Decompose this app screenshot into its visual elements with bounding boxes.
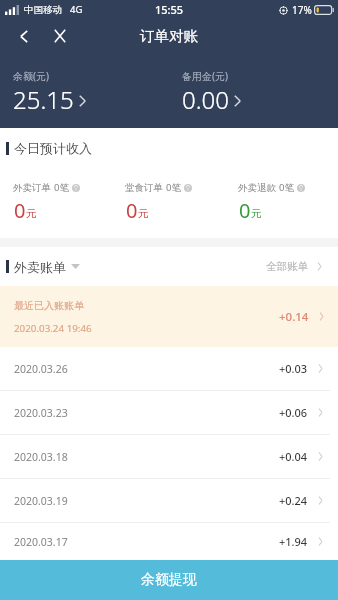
staticText: 0笔	[279, 181, 294, 194]
staticText: 0	[14, 197, 26, 224]
staticText: 外卖订单	[13, 182, 51, 194]
button[interactable]: 2020.03.18	[0, 435, 338, 478]
staticText: 元	[26, 207, 37, 220]
button[interactable]: 备用金(元)	[169, 53, 338, 128]
staticText: 今日预计收入	[14, 140, 92, 156]
staticText: 全部账单	[266, 260, 308, 273]
staticText: 订单对账	[140, 27, 198, 45]
staticText: +0.04	[279, 449, 308, 464]
button[interactable]: 2020.03.17	[0, 523, 338, 560]
staticText: 2020.03.24 19:46	[14, 322, 92, 335]
staticText: 2020.03.18	[14, 450, 68, 464]
staticText: 0笔	[166, 181, 181, 194]
button[interactable]: 2020.03.19	[0, 479, 338, 522]
staticText: 0	[239, 197, 251, 224]
staticText: 中国移动	[24, 4, 62, 16]
button[interactable]: 余额提现	[0, 560, 338, 600]
staticText: 2020.03.17	[14, 535, 68, 549]
button[interactable]: Back	[11, 19, 37, 53]
staticText: 0.00	[182, 83, 229, 116]
staticText: +0.24	[279, 493, 308, 508]
staticText: 堂食订单	[125, 182, 163, 194]
staticText: 15:55	[155, 2, 184, 17]
staticText: 元	[138, 207, 149, 220]
staticText: +1.94	[279, 534, 308, 549]
button[interactable]: 最近已入账账单	[0, 286, 338, 347]
staticText: 余额(元)	[13, 69, 49, 83]
staticText: 外卖账单	[14, 259, 66, 275]
staticText: 25.15	[13, 83, 74, 116]
staticText: 余额提现	[141, 571, 197, 589]
staticText: 最近已入账账单	[14, 299, 84, 312]
button[interactable]: 余额(元)	[0, 53, 169, 128]
staticText: +0.06	[279, 405, 308, 420]
staticText: 元	[251, 207, 262, 220]
staticText: 0	[126, 197, 138, 224]
staticText: +0.14	[279, 309, 309, 325]
button[interactable]: 2020.03.26	[0, 347, 338, 390]
button[interactable]: 全部账单	[254, 252, 338, 281]
staticText: 4G	[70, 3, 83, 16]
staticText: 2020.03.23	[14, 406, 68, 420]
staticText: 2020.03.26	[14, 362, 68, 376]
staticText: 外卖退款	[238, 182, 276, 194]
staticText: 0笔	[54, 181, 69, 194]
staticText: 17%	[292, 3, 312, 17]
staticText: 2020.03.19	[14, 494, 68, 508]
button[interactable]: 2020.03.23	[0, 391, 338, 434]
staticText: 备用金(元)	[182, 69, 228, 83]
button[interactable]: Close	[47, 19, 73, 53]
staticText: +0.03	[279, 361, 308, 376]
